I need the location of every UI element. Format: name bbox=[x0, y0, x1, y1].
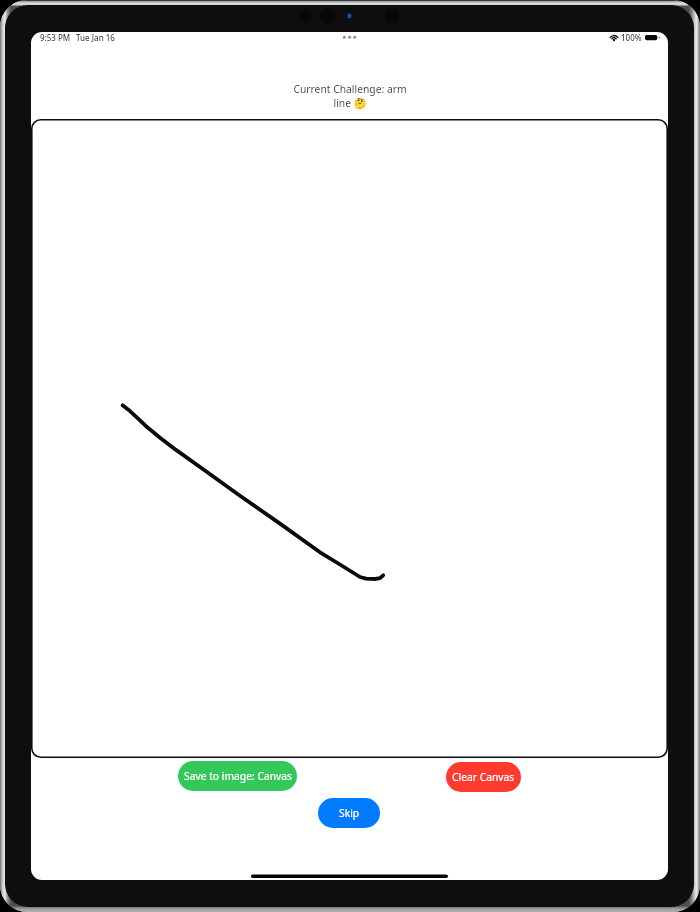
button[interactable]: Skip bbox=[318, 798, 380, 828]
button[interactable]: Drawing canvas bbox=[31, 119, 668, 758]
button[interactable]: Save to image: Canvas bbox=[178, 761, 297, 791]
staticText: 9:53 PM bbox=[40, 32, 71, 43]
staticText: Clear Canvas bbox=[452, 770, 515, 784]
staticText: 100% bbox=[621, 32, 642, 43]
other: Wi-Fi connected bbox=[609, 33, 619, 41]
staticText: Current Challenge: arm line 🤔 bbox=[293, 82, 407, 110]
staticText: Tue Jan 16 bbox=[76, 32, 115, 43]
staticText: Save to image: Canvas bbox=[184, 769, 292, 783]
button[interactable]: Clear Canvas bbox=[446, 762, 521, 792]
other: Battery 100 percent bbox=[645, 35, 660, 41]
staticText: Skip bbox=[339, 806, 360, 820]
